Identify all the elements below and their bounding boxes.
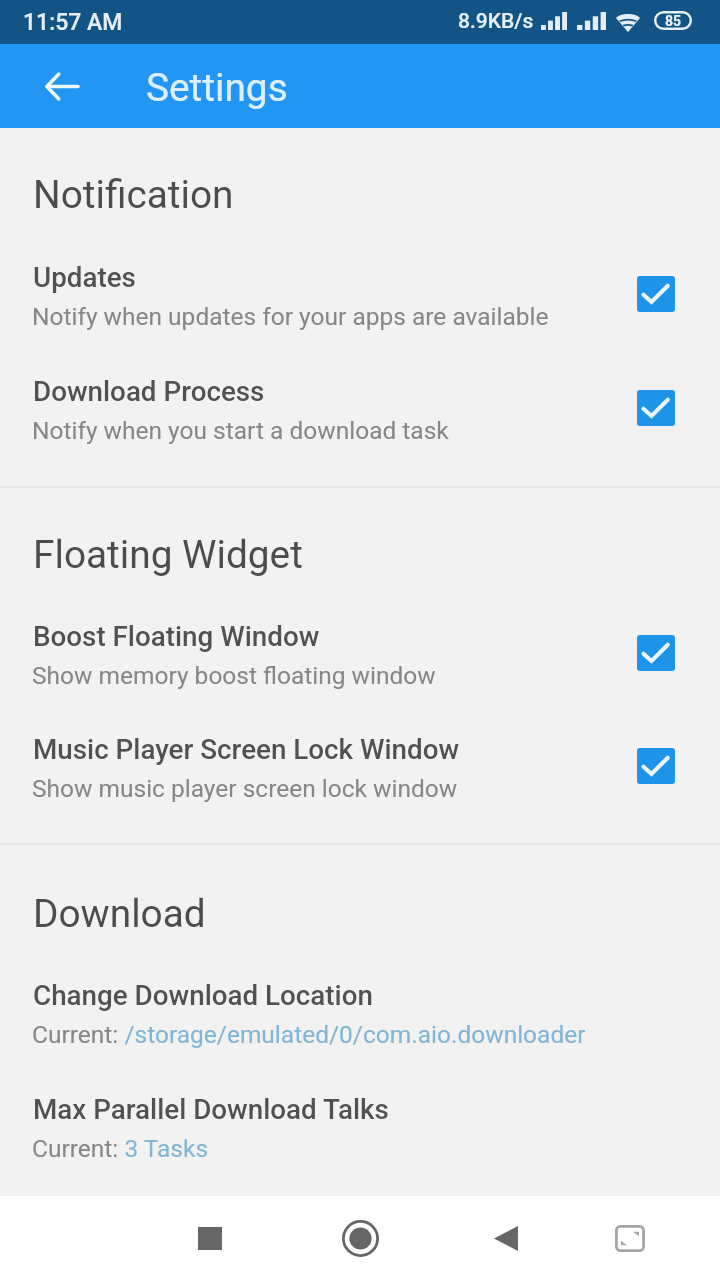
button[interactable]: Music Player Screen Lock Window checkbox… [637,748,675,784]
staticText: Show music player screen lock window [32,774,458,803]
button[interactable] [0,500,720,602]
staticText: Change Download Location [33,979,373,1012]
staticText: Music Player Screen Lock Window [33,733,460,766]
staticText: Notify when you start a download task [32,416,449,445]
staticText: Boost Floating Window [33,620,320,653]
button[interactable]: Navigate up [22,46,102,126]
button[interactable]: Boost Floating Window [0,602,720,715]
staticText: Download [33,891,206,936]
button[interactable] [0,140,720,244]
staticText: Notify when updates for your apps are av… [32,302,549,331]
button[interactable]: Boost Floating Window checkbox, checked [637,635,675,671]
button[interactable]: Updates checkbox, checked [637,276,675,312]
button[interactable]: Screenshot [591,1199,669,1277]
button[interactable]: Home [321,1199,399,1277]
button[interactable]: Change Download Location [0,960,720,1075]
staticText: Floating Widget [33,532,303,577]
button[interactable]: Download Process [0,357,720,470]
button[interactable]: Back [467,1199,545,1277]
staticText: Download Process [33,375,265,408]
button[interactable]: Music Player Screen Lock Window [0,715,720,828]
button[interactable]: Updates [0,244,720,357]
staticText: 8.9KB/s [458,9,534,34]
button[interactable]: Recents [171,1199,249,1277]
staticText: Max Parallel Download Talks [33,1093,389,1126]
button[interactable] [0,858,720,960]
staticText: Current: /storage/emulated/0/com.aio.dow… [32,1020,586,1049]
staticText: 85 [665,13,682,29]
staticText: Current: 3 Tasks [32,1134,209,1163]
button[interactable]: Max Parallel Download Talks [0,1075,720,1188]
staticText: 11:57 AM [23,9,123,36]
staticText: Settings [146,65,288,110]
staticText: Updates [33,261,136,294]
button[interactable]: Download Process checkbox, checked [637,390,675,426]
staticText: Notification [33,172,234,217]
staticText: Show memory boost floating window [32,661,436,690]
